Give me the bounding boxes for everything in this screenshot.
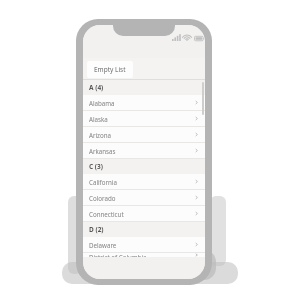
staticText: A (4): [89, 83, 104, 92]
button[interactable]: Connecticut: [83, 206, 205, 221]
staticText: Colorado: [89, 194, 194, 202]
staticText: Arkansas: [89, 147, 194, 155]
button[interactable]: Alaska: [83, 111, 205, 126]
staticText: Empty List: [94, 65, 126, 74]
staticText: Alabama: [89, 99, 194, 107]
other: Open Delaware: [194, 242, 199, 247]
other: Open District of Columbia: [194, 253, 199, 257]
other: Open Colorado: [194, 195, 199, 200]
other: Open California: [194, 179, 199, 184]
staticText: District of Columbia: [89, 253, 194, 257]
staticText: D (2): [89, 225, 104, 234]
staticText: Alaska: [89, 115, 194, 123]
staticText: California: [89, 178, 194, 186]
other: Open Alaska: [194, 116, 199, 121]
staticText: C (3): [89, 162, 103, 171]
button[interactable]: Empty List: [87, 61, 133, 78]
button[interactable]: District of Columbia: [83, 253, 205, 257]
other: Open Alabama: [194, 100, 199, 105]
staticText: Arizona: [89, 131, 194, 139]
button[interactable]: Colorado: [83, 190, 205, 205]
other: Open Arkansas: [194, 148, 199, 153]
staticText: Connecticut: [89, 210, 194, 218]
button[interactable]: California: [83, 174, 205, 189]
button[interactable]: Alabama: [83, 95, 205, 110]
button[interactable]: Arizona: [83, 127, 205, 142]
staticText: Delaware: [89, 241, 194, 249]
other: Open Connecticut: [194, 211, 199, 216]
button[interactable]: Arkansas: [83, 143, 205, 158]
other: Open Arizona: [194, 132, 199, 137]
button[interactable]: Delaware: [83, 237, 205, 252]
